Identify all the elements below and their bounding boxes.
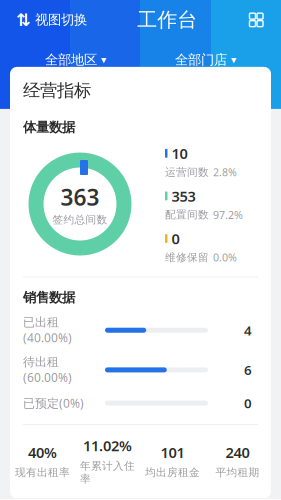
button[interactable]: 全部门店 <box>140 45 270 75</box>
staticText: 97.2% <box>213 208 243 222</box>
staticText: 已出租(40.00%) <box>23 315 72 346</box>
staticText: ⇅ <box>16 10 31 30</box>
staticText: 11.02% <box>83 436 132 455</box>
staticText: 6 <box>244 361 252 379</box>
staticText: 已预定(0%) <box>23 395 84 411</box>
staticText: 签约总间数 <box>52 213 107 226</box>
staticText: 240 <box>225 442 249 462</box>
staticText: 全部门店 <box>175 52 227 68</box>
staticText: 10 <box>171 144 187 163</box>
staticText: 40% <box>28 442 57 462</box>
staticText: 运营间数 <box>165 166 209 179</box>
staticText: 配置间数 <box>165 208 209 221</box>
button[interactable]: 全部地区 <box>10 45 140 75</box>
staticText: 101 <box>160 442 184 462</box>
button[interactable]: ⇅ <box>12 4 91 36</box>
staticText: 0 <box>171 229 179 248</box>
staticText: 待出租(60.00%) <box>23 354 72 385</box>
staticText: 2.8% <box>213 165 237 179</box>
staticText: 经营指标 <box>23 80 91 101</box>
staticText: 维修保留 <box>165 251 209 264</box>
staticText: 平均租期 <box>215 466 259 479</box>
staticText: 销售数据 <box>23 289 75 306</box>
staticText: 4 <box>244 321 252 339</box>
staticText: ▾ <box>231 54 236 66</box>
staticText: 0.0% <box>213 250 237 264</box>
staticText: 363 <box>60 182 99 212</box>
button[interactable]: 扫一扫 <box>243 7 269 33</box>
staticText: 全部地区 <box>45 52 97 68</box>
staticText: 体量数据 <box>23 119 75 136</box>
staticText: 视图切换 <box>35 12 87 28</box>
staticText: 0 <box>244 394 252 412</box>
staticText: 353 <box>171 186 195 206</box>
staticText: 均出房租金 <box>145 466 200 479</box>
staticText: 现有出租率 <box>15 466 70 479</box>
staticText: 年累计入住率 <box>80 459 135 486</box>
staticText: 工作台 <box>137 8 197 32</box>
staticText: ▾ <box>101 54 106 66</box>
